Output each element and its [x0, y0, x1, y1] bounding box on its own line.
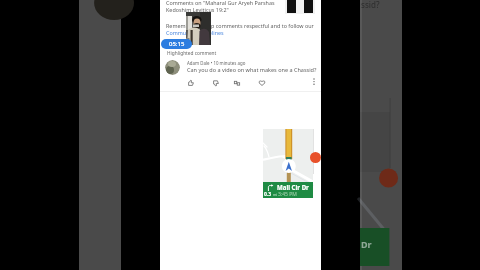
staticText: mi — [273, 192, 278, 197]
button[interactable]: Recenter — [310, 152, 321, 163]
button[interactable]: Like — [185, 77, 197, 89]
staticText: Mall Cir Dr — [277, 183, 309, 191]
staticText: Highlighted comment — [167, 50, 217, 57]
button[interactable]: More options — [309, 76, 319, 86]
staticText: Dr — [361, 238, 372, 250]
button[interactable]: Dislike — [210, 77, 222, 89]
staticText: 3:45 PM — [278, 191, 297, 198]
staticText: Can you do a video on what makes one a C… — [187, 66, 317, 73]
staticText: 05:15 — [169, 40, 185, 48]
button[interactable]: Reply — [231, 77, 243, 89]
button[interactable]: Community Guidelines — [166, 29, 224, 36]
button[interactable]: Mall Cir Dr — [263, 129, 313, 198]
staticText: Adam Dale • 10 minutes ago — [187, 60, 246, 66]
button[interactable]: 05:15 — [161, 39, 192, 49]
staticText: Kedoshim Leviticus 19:2" — [166, 6, 229, 13]
staticText: Remember to keep comments respectful and… — [166, 22, 314, 29]
staticText: Comments on "Maharal Gur Aryeh Parshas — [166, 0, 275, 6]
staticText: 0.3 — [264, 191, 272, 198]
staticText: ssid? — [361, 0, 380, 10]
button[interactable]: Heart — [256, 77, 268, 89]
